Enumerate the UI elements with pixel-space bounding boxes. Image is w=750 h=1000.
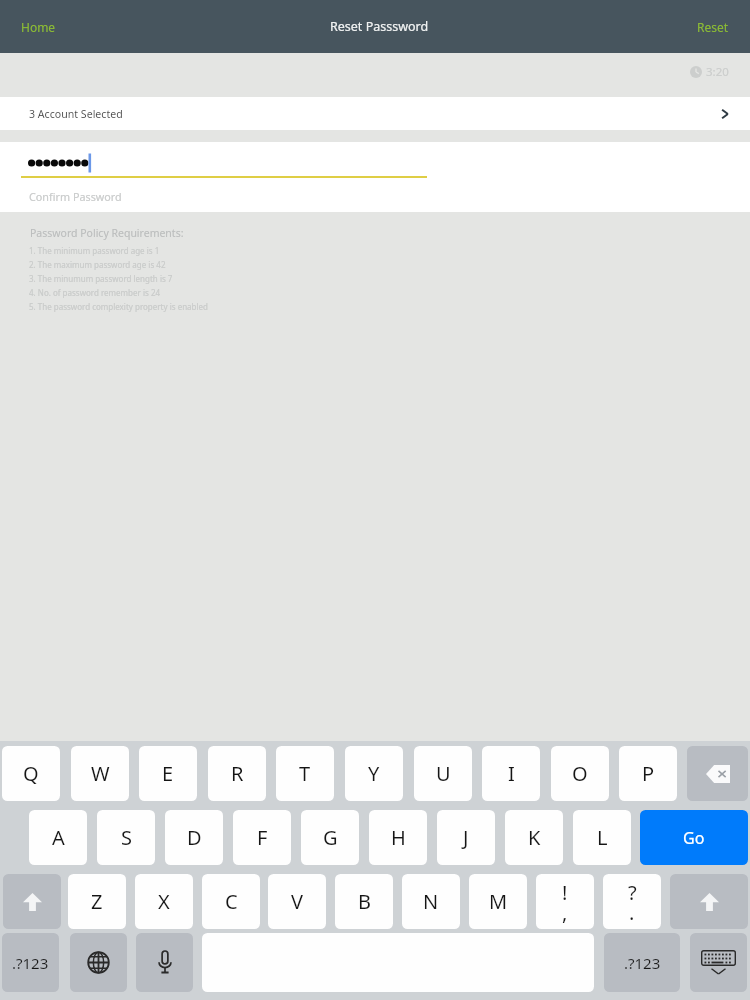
staticText: Reset — [697, 19, 729, 35]
button[interactable]: .?123 — [2, 933, 59, 992]
staticText: J — [463, 824, 469, 851]
button[interactable]: Backspace — [687, 746, 748, 801]
staticText: ! — [562, 879, 568, 906]
staticText: P — [642, 760, 655, 787]
staticText: D — [187, 824, 202, 851]
button[interactable]: F — [233, 810, 291, 865]
staticText: 4. No. of password remember is 24 — [29, 287, 161, 298]
staticText: M — [489, 888, 508, 915]
button[interactable]: Home — [9, 10, 68, 44]
staticText: W — [91, 760, 110, 787]
button[interactable]: K — [505, 810, 563, 865]
button[interactable]: M — [469, 874, 527, 929]
staticText: F — [257, 824, 268, 851]
button[interactable]: Reset — [685, 10, 741, 44]
button[interactable]: Hide keyboard — [690, 933, 747, 992]
button[interactable]: H — [369, 810, 427, 865]
staticText: R — [231, 760, 244, 787]
staticText: T — [299, 760, 311, 787]
button[interactable]: .?123 — [604, 933, 680, 992]
staticText: 1. The minimum password age is 1 — [29, 245, 160, 256]
staticText: X — [158, 888, 170, 915]
staticText: U — [436, 760, 451, 787]
button[interactable]: E — [139, 746, 197, 801]
staticText: , — [562, 899, 568, 926]
staticText: O — [572, 760, 588, 787]
staticText: 5. The password complexity property is e… — [29, 301, 208, 312]
staticText: .?123 — [624, 953, 661, 973]
staticText: S — [121, 824, 132, 851]
button[interactable]: C — [202, 874, 260, 929]
button[interactable]: Go — [640, 810, 748, 865]
button[interactable]: ! — [536, 874, 594, 929]
staticText: B — [358, 888, 371, 915]
button[interactable]: Shift — [3, 874, 61, 929]
staticText: I — [508, 760, 515, 787]
staticText: Home — [21, 19, 56, 35]
button[interactable]: T — [276, 746, 334, 801]
staticText: ? — [628, 879, 637, 906]
staticText: Password Policy Requirements: — [30, 226, 184, 240]
button[interactable]: 3 Account Selected — [0, 97, 750, 130]
button[interactable]: P — [619, 746, 677, 801]
staticText: H — [391, 824, 406, 851]
staticText: Confirm Password — [29, 189, 122, 204]
button[interactable]: G — [301, 810, 359, 865]
staticText: Q — [23, 760, 39, 787]
staticText: Z — [91, 888, 103, 915]
staticText: V — [291, 888, 303, 915]
button[interactable]: B — [335, 874, 393, 929]
button[interactable]: V — [268, 874, 326, 929]
button[interactable]: Q — [2, 746, 60, 801]
staticText: N — [423, 888, 439, 915]
staticText: 2. The maximum password age is 42 — [29, 259, 166, 270]
button[interactable]: Change keyboard language — [70, 933, 127, 992]
button[interactable]: I — [482, 746, 540, 801]
staticText: .?123 — [12, 953, 49, 973]
button[interactable]: A — [29, 810, 87, 865]
button[interactable]: N — [402, 874, 460, 929]
staticText: 3 Account Selected — [29, 107, 123, 121]
staticText: K — [528, 824, 541, 851]
button[interactable]: Dictate — [136, 933, 193, 992]
staticText: . — [629, 899, 635, 926]
button[interactable]: Shift — [670, 874, 748, 929]
button[interactable]: R — [208, 746, 266, 801]
button[interactable]: L — [573, 810, 631, 865]
staticText: 3. The minumum password length is 7 — [29, 273, 173, 284]
button[interactable]: D — [165, 810, 223, 865]
staticText: 3:20 — [706, 64, 729, 80]
staticText: C — [225, 888, 238, 915]
staticText: L — [597, 824, 608, 851]
button[interactable]: X — [135, 874, 193, 929]
button[interactable]: O — [551, 746, 609, 801]
button[interactable]: W — [71, 746, 129, 801]
button[interactable]: S — [97, 810, 155, 865]
staticText: G — [323, 824, 338, 851]
button[interactable]: U — [414, 746, 472, 801]
button[interactable]: J — [437, 810, 495, 865]
staticText: E — [162, 760, 174, 787]
button[interactable]: ? — [603, 874, 661, 929]
staticText: Reset Passsword — [330, 18, 429, 35]
staticText: A — [52, 824, 65, 851]
button[interactable]: Y — [345, 746, 403, 801]
staticText: Go — [683, 827, 705, 849]
button[interactable]: Z — [68, 874, 126, 929]
staticText: Y — [368, 760, 380, 787]
